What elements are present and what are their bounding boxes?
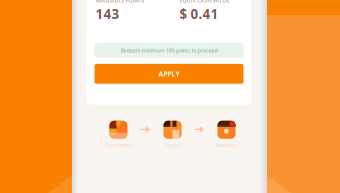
button[interactable]: APPLY (94, 64, 243, 84)
staticText: APPLY (158, 69, 179, 78)
staticText: AVAILABLE POINTS (95, 0, 144, 4)
staticText: Redeem minimum 100 points to proceed (120, 47, 217, 54)
staticText: EQUIV. CASH VALUE (179, 0, 229, 4)
button[interactable]: Rewards (204, 121, 248, 149)
staticText: Rewards (216, 142, 237, 149)
staticText: 143 (95, 5, 119, 23)
staticText: Spend (165, 142, 180, 149)
staticText: $ 0.41 (179, 5, 218, 23)
button[interactable]: Spend (150, 121, 194, 149)
staticText: Earn Points (105, 142, 132, 149)
button[interactable]: Earn Points (96, 121, 140, 149)
